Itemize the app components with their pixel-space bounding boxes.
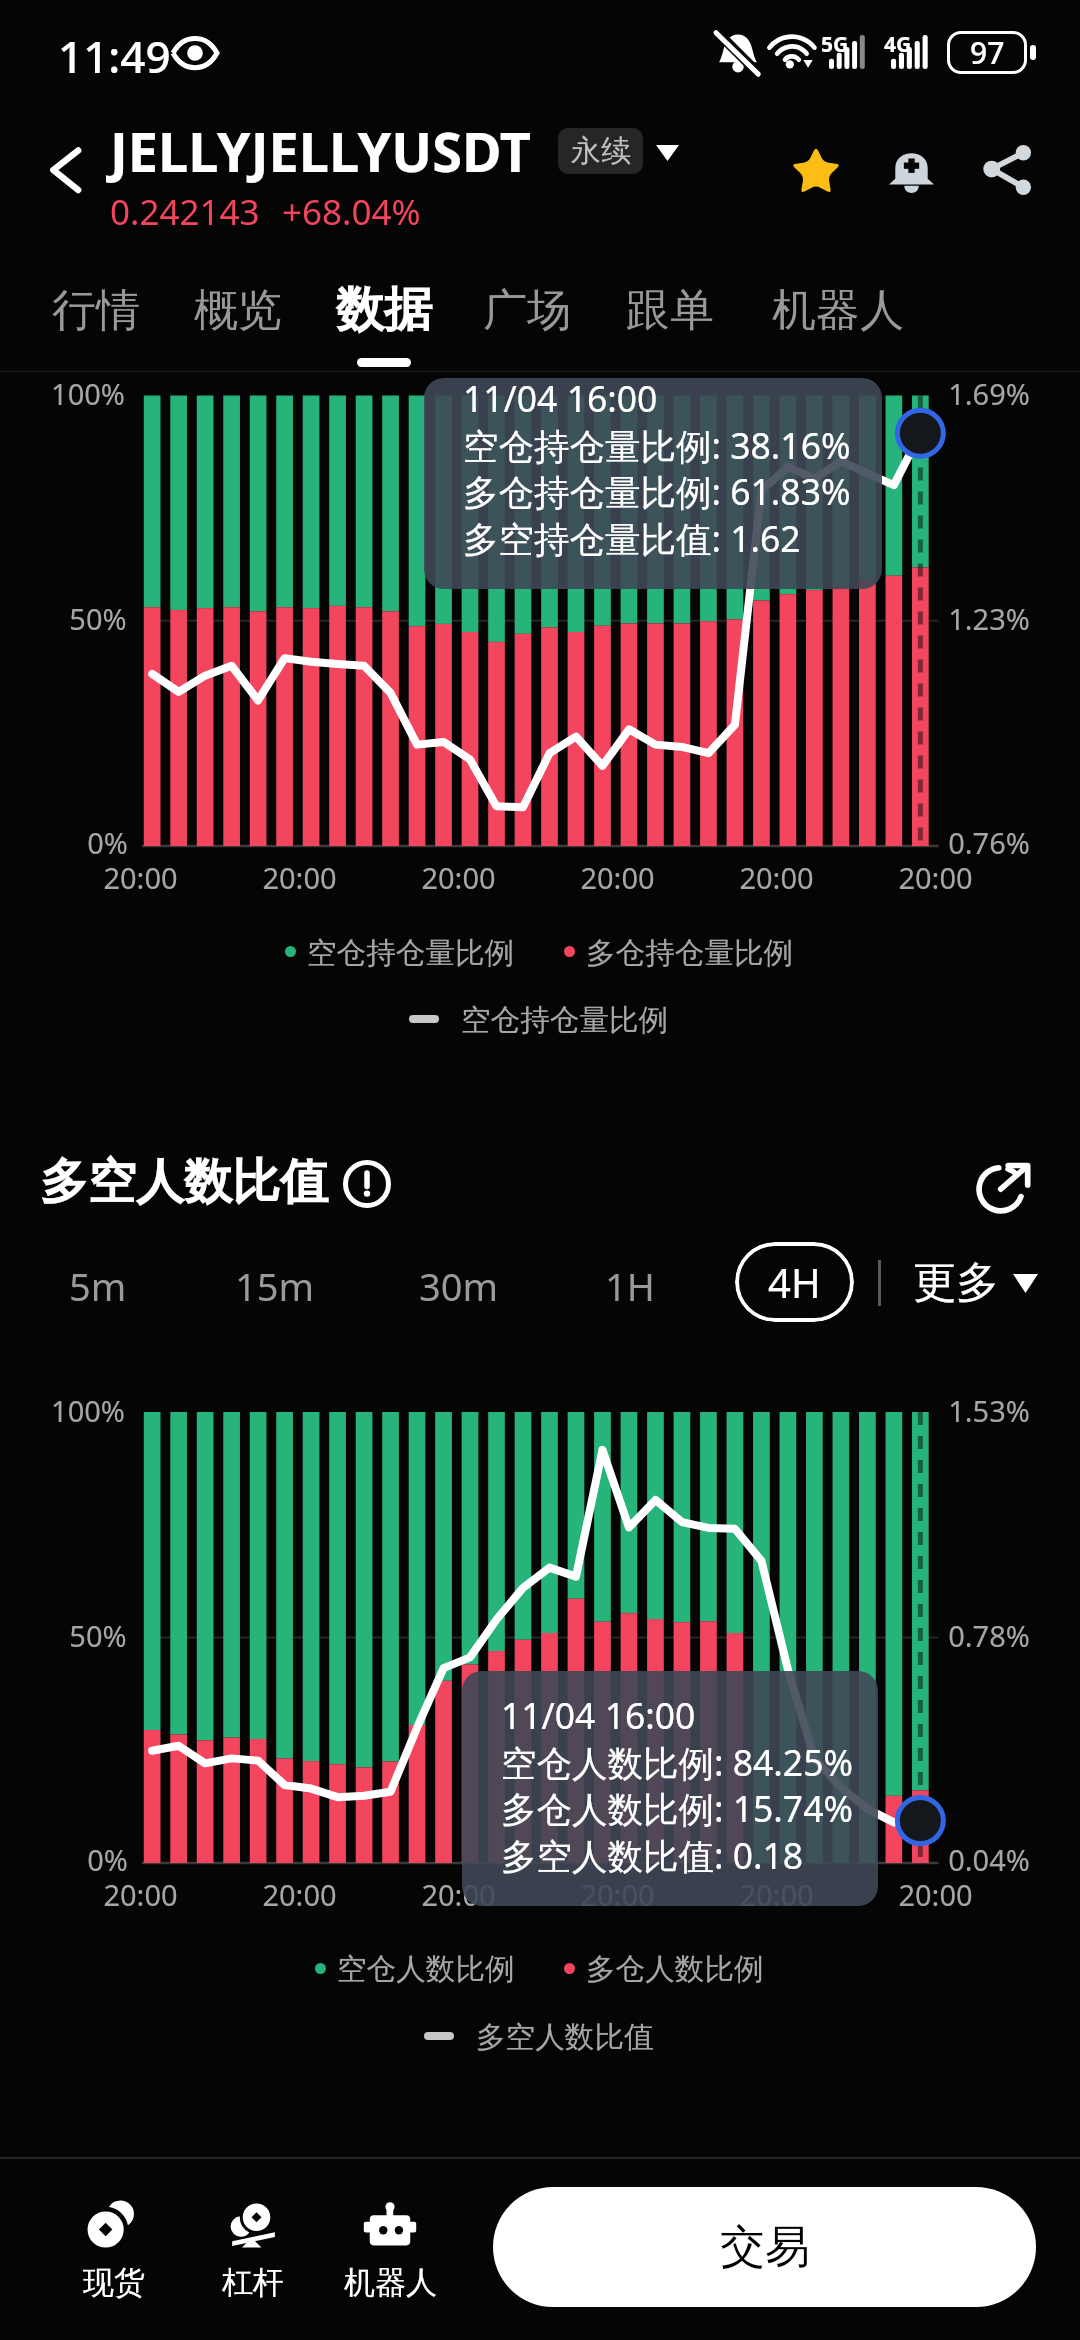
staticText: JELLYJELLYUSDT — [110, 114, 531, 188]
staticText: 50% — [69, 599, 127, 638]
staticText: 更多 — [913, 1256, 999, 1310]
staticText: 4G — [884, 30, 912, 59]
button[interactable]: 广场 — [478, 272, 576, 348]
button[interactable]: 行情 — [47, 272, 145, 348]
button[interactable]: 现货 — [44, 2196, 184, 2302]
staticText: 空仓持仓量比例 — [307, 934, 515, 971]
staticText: 多空人数比值 — [40, 1152, 328, 1212]
button[interactable]: Info — [343, 1160, 391, 1208]
button[interactable]: Share — [984, 146, 1032, 194]
staticText: 5m — [69, 1260, 127, 1312]
staticText: 5G — [821, 30, 849, 59]
staticText: 20:00 — [898, 1875, 973, 1914]
staticText: 跟单 — [626, 283, 714, 338]
button[interactable]: 1H — [560, 1246, 700, 1326]
button[interactable]: 交易 — [493, 2187, 1036, 2307]
staticText: 交易 — [720, 2219, 810, 2276]
staticText: 20:00 — [739, 858, 814, 897]
staticText: 多空持仓量比值: 1.62 — [463, 514, 801, 562]
staticText: 20:00 — [421, 1875, 496, 1914]
staticText: 0.242143 — [110, 188, 260, 236]
staticText: 多仓人数比例: 15.74% — [501, 1784, 853, 1832]
staticText: 多仓持仓量比例: 61.83% — [463, 467, 851, 515]
staticText: 20:00 — [898, 858, 973, 897]
button[interactable]: 5m — [28, 1246, 168, 1326]
staticText: 广场 — [483, 283, 571, 338]
button[interactable]: 数据 — [331, 272, 437, 348]
staticText: 97 — [970, 32, 1005, 73]
staticText: 多空人数比值 — [476, 2018, 654, 2055]
button[interactable]: Price alert — [889, 146, 934, 194]
staticText: 20:00 — [421, 858, 496, 897]
staticText: 100% — [51, 374, 125, 413]
staticText: 11/04 16:00 — [501, 1691, 696, 1739]
staticText: 1.23% — [948, 599, 1030, 638]
button[interactable]: Expand chart — [978, 1159, 1032, 1213]
staticText: 11:49 — [58, 26, 171, 86]
staticText: 20:00 — [739, 1875, 814, 1914]
button[interactable]: 跟单 — [621, 272, 719, 348]
staticText: 现货 — [83, 2263, 145, 2302]
staticText: 空仓持仓量比例 — [461, 1001, 669, 1038]
staticText: 多仓持仓量比例 — [586, 934, 794, 971]
button[interactable]: 更多 — [913, 1248, 1038, 1318]
staticText: 1.53% — [948, 1391, 1030, 1430]
staticText: 永续 — [571, 132, 631, 170]
button[interactable]: Favorite — [790, 146, 842, 195]
staticText: 100% — [51, 1391, 125, 1430]
staticText: 概览 — [194, 283, 282, 338]
staticText: 0.76% — [948, 823, 1030, 862]
button[interactable]: 15m — [205, 1246, 345, 1326]
staticText: 11/04 16:00 — [463, 374, 658, 422]
staticText: 15m — [235, 1260, 315, 1312]
staticText: 20:00 — [580, 858, 655, 897]
staticText: +68.04% — [282, 188, 421, 236]
button[interactable]: Back — [42, 142, 90, 198]
staticText: 0.78% — [948, 1616, 1030, 1655]
staticText: 20:00 — [103, 858, 178, 897]
staticText: 4H — [768, 1255, 821, 1309]
staticText: 20:00 — [262, 858, 337, 897]
staticText: 1.69% — [948, 374, 1030, 413]
staticText: 空仓人数比例: 84.25% — [501, 1738, 853, 1786]
staticText: 多空人数比值: 0.18 — [501, 1831, 804, 1879]
button[interactable]: 机器人 — [767, 272, 909, 348]
button[interactable]: 30m — [389, 1246, 529, 1326]
staticText: 行情 — [52, 283, 140, 338]
staticText: 多仓人数比例 — [586, 1950, 764, 1987]
button[interactable]: 机器人 — [320, 2196, 460, 2302]
staticText: 杠杆 — [222, 2263, 284, 2302]
staticText: 数据 — [336, 280, 432, 340]
staticText: 空仓人数比例 — [337, 1950, 515, 1987]
button[interactable]: 杠杆 — [183, 2196, 323, 2302]
staticText: 0.04% — [948, 1840, 1030, 1879]
button[interactable]: Contract type — [656, 145, 679, 161]
button[interactable]: 4H — [735, 1242, 854, 1322]
staticText: 50% — [69, 1616, 127, 1655]
staticText: 机器人 — [344, 2263, 437, 2302]
button[interactable]: 概览 — [189, 272, 287, 348]
staticText: 机器人 — [772, 283, 904, 338]
button[interactable]: 永续 — [558, 128, 643, 174]
staticText: 0% — [87, 823, 128, 862]
staticText: 1H — [605, 1260, 655, 1312]
staticText: 20:00 — [262, 1875, 337, 1914]
staticText: 空仓持仓量比例: 38.16% — [463, 421, 851, 469]
staticText: 20:00 — [103, 1875, 178, 1914]
staticText: 20:00 — [580, 1875, 655, 1914]
staticText: 30m — [419, 1260, 499, 1312]
staticText: 0% — [87, 1840, 128, 1879]
